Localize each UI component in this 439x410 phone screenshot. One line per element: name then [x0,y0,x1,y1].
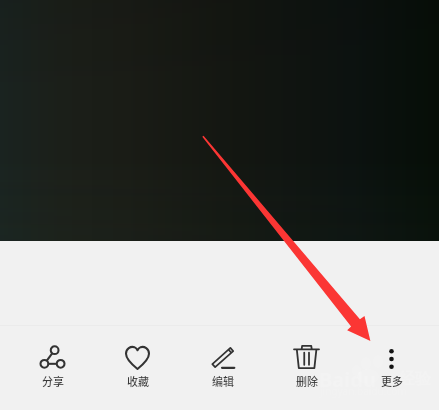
staticText: 删除 [296,373,318,389]
staticText: jingyan.baidu.com [320,384,407,398]
button[interactable]: Edit [180,330,265,392]
button[interactable]: More [349,330,434,392]
staticText: 更多 [381,373,403,389]
staticText: 编辑 [212,373,234,389]
staticText: 经验 [399,369,431,389]
button[interactable]: Delete [264,330,349,392]
button[interactable]: Share [10,330,95,392]
staticText: 收藏 [127,373,149,389]
staticText: 分享 [42,373,64,389]
button[interactable]: Favorite [95,330,180,392]
